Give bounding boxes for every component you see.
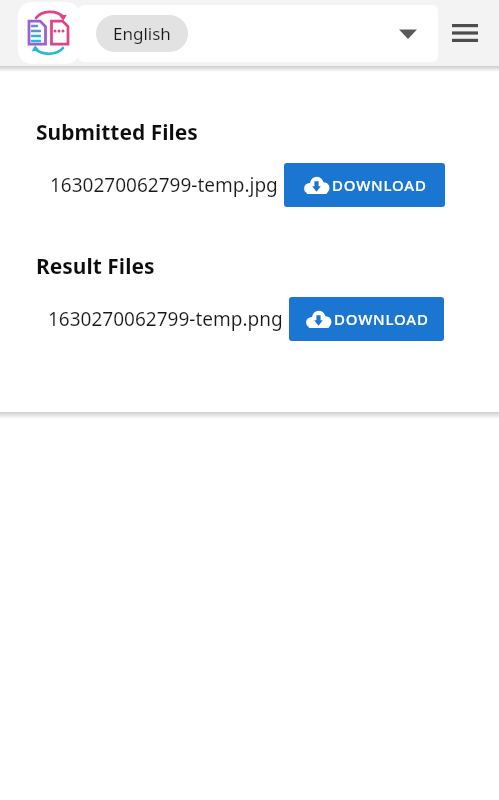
staticText: Submitted Files <box>36 118 198 147</box>
button[interactable]: App logo <box>18 2 80 64</box>
staticText: 1630270062799-temp.png <box>48 306 283 332</box>
staticText: DOWNLOAD <box>332 175 427 195</box>
staticText: Result Files <box>36 252 155 281</box>
button[interactable]: DOWNLOAD <box>284 163 445 207</box>
button[interactable]: Menu <box>443 11 487 55</box>
staticText: English <box>113 22 171 45</box>
button[interactable]: English <box>78 5 438 62</box>
button[interactable]: DOWNLOAD <box>289 297 444 341</box>
staticText: 1630270062799-temp.jpg <box>50 172 278 198</box>
staticText: DOWNLOAD <box>334 309 429 329</box>
